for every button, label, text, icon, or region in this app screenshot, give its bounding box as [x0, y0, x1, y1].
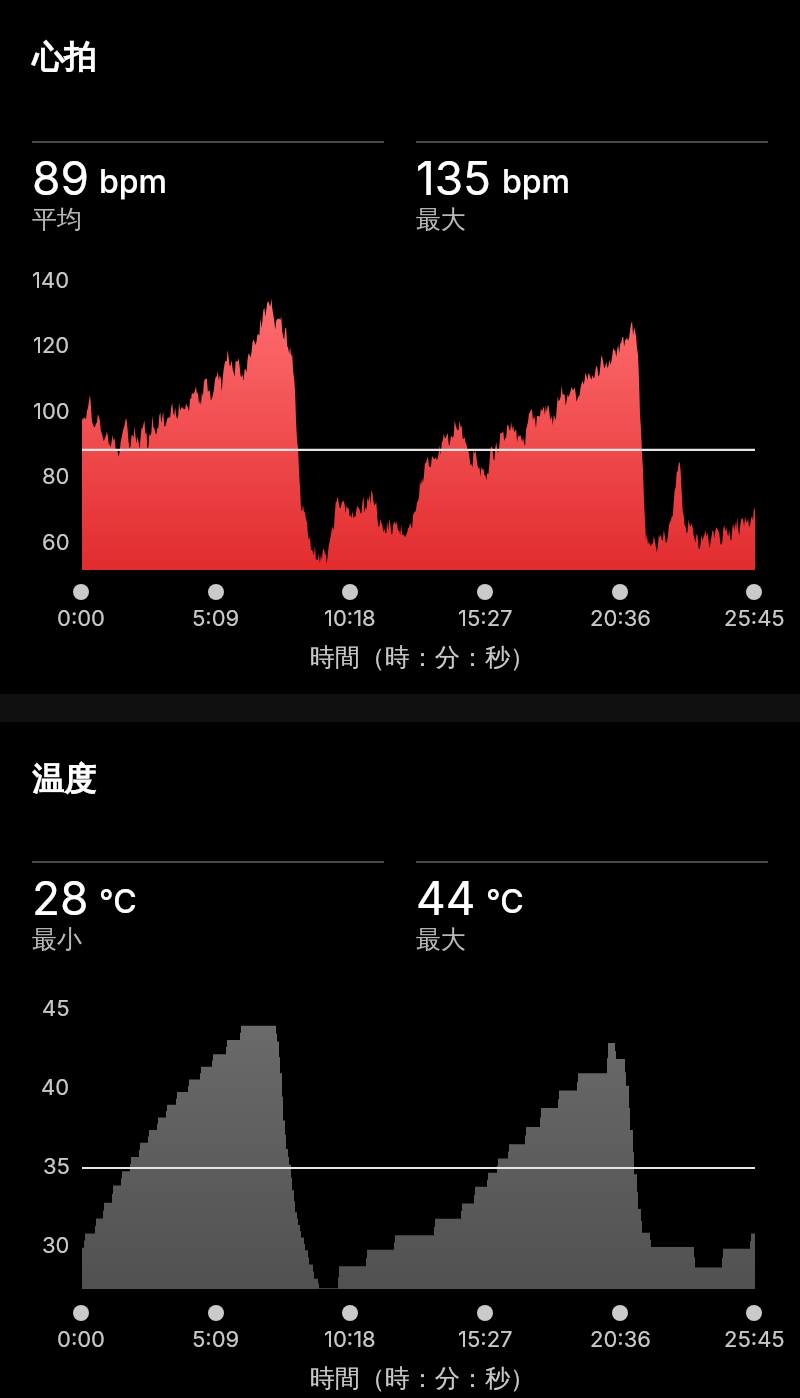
staticText: 0:00: [57, 1326, 105, 1353]
staticText: 28: [32, 870, 89, 926]
staticText: 25:45: [724, 1326, 785, 1353]
button[interactable]: Time marker 15:27: [477, 584, 493, 600]
staticText: 89: [32, 150, 89, 206]
staticText: 温度: [32, 759, 96, 799]
staticText: 5:09: [192, 1326, 240, 1353]
button[interactable]: Time marker 0:00: [73, 584, 89, 600]
staticText: 時間（時：分：秒）: [310, 642, 535, 673]
staticText: 最大: [416, 204, 466, 235]
staticText: 25:45: [724, 605, 785, 632]
button[interactable]: Time marker 20:36: [612, 1305, 628, 1321]
staticText: 20:36: [590, 605, 651, 632]
staticText: 140: [32, 267, 70, 294]
staticText: bpm: [502, 162, 570, 201]
staticText: 35: [43, 1153, 70, 1180]
staticText: 平均: [32, 204, 82, 235]
staticText: °C: [99, 882, 137, 921]
button[interactable]: Time marker 5:09: [208, 584, 224, 600]
staticText: 45: [42, 995, 70, 1022]
staticText: 120: [33, 332, 70, 359]
staticText: 135: [416, 150, 492, 206]
staticText: 20:36: [590, 1326, 651, 1353]
staticText: 0:00: [57, 605, 105, 632]
button[interactable]: Time marker 25:45: [746, 584, 762, 600]
button[interactable]: Time marker 5:09: [208, 1305, 224, 1321]
staticText: 40: [41, 1074, 70, 1101]
staticText: 10:18: [324, 1326, 376, 1353]
button[interactable]: Time marker 15:27: [477, 1305, 493, 1321]
staticText: 80: [42, 463, 70, 490]
button[interactable]: Time marker 25:45: [746, 1305, 762, 1321]
button[interactable]: Temperature section: [32, 759, 96, 799]
staticText: 10:18: [324, 605, 376, 632]
staticText: 60: [42, 529, 70, 556]
staticText: 30: [42, 1232, 70, 1259]
staticText: 心拍: [32, 37, 96, 77]
staticText: °C: [486, 882, 524, 921]
staticText: 100: [33, 398, 70, 425]
staticText: 最大: [416, 924, 466, 955]
button[interactable]: Time marker 10:18: [342, 1305, 358, 1321]
staticText: 最小: [32, 924, 82, 955]
button[interactable]: Time marker 10:18: [342, 584, 358, 600]
staticText: 44: [416, 870, 476, 926]
staticText: 時間（時：分：秒）: [310, 1363, 535, 1394]
staticText: 5:09: [192, 605, 240, 632]
button[interactable]: Time marker 20:36: [612, 584, 628, 600]
button[interactable]: Time marker 0:00: [73, 1305, 89, 1321]
staticText: 15:27: [458, 1326, 513, 1353]
staticText: bpm: [99, 162, 167, 201]
button[interactable]: Heart rate section: [32, 37, 96, 77]
staticText: 15:27: [458, 605, 513, 632]
